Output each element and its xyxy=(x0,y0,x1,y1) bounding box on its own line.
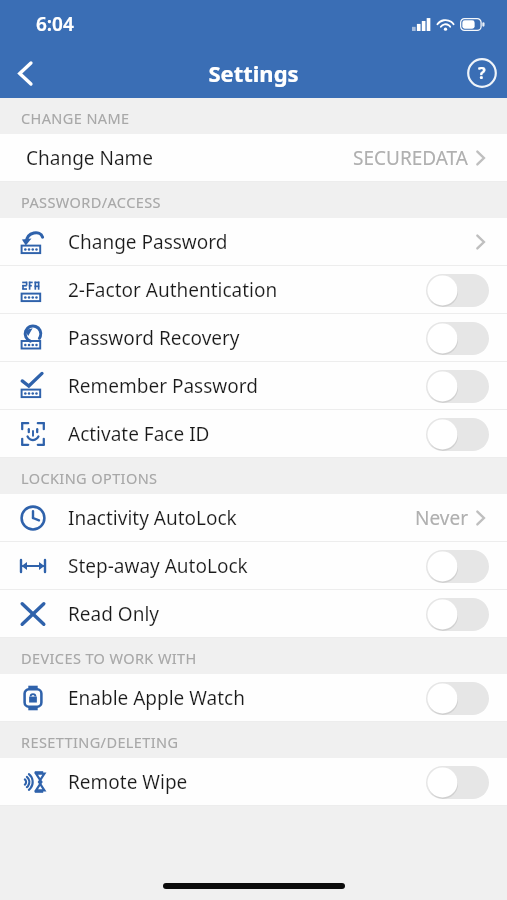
button[interactable]: Toggle xyxy=(426,418,489,451)
button[interactable]: Enable Apple Watch xyxy=(0,674,507,722)
staticText: Inactivity AutoLock xyxy=(68,505,237,531)
button[interactable]: Toggle xyxy=(426,322,489,355)
staticText: CHANGE NAME xyxy=(21,108,130,128)
staticText: Activate Face ID xyxy=(68,421,210,447)
staticText: RESETTING/DELETING xyxy=(21,732,179,752)
button[interactable]: Back xyxy=(0,48,50,98)
button[interactable]: Inactivity AutoLock xyxy=(0,494,507,542)
button[interactable]: Change Password xyxy=(0,218,507,266)
staticText: Remember Password xyxy=(68,373,258,399)
button[interactable]: Activate Face ID xyxy=(0,410,507,458)
button[interactable]: Remember Password xyxy=(0,362,507,410)
staticText: Read Only xyxy=(68,601,159,627)
staticText: Change Password xyxy=(68,229,228,255)
staticText: Never xyxy=(415,505,468,531)
button[interactable]: Read Only xyxy=(0,590,507,638)
button[interactable]: Password Recovery xyxy=(0,314,507,362)
staticText: DEVICES TO WORK WITH xyxy=(21,648,197,668)
staticText: LOCKING OPTIONS xyxy=(21,468,158,488)
staticText: PASSWORD/ACCESS xyxy=(21,192,161,212)
staticText: SECUREDATA xyxy=(353,145,468,171)
button[interactable]: Toggle xyxy=(426,274,489,307)
staticText: ? xyxy=(478,62,486,84)
button[interactable]: Change Name xyxy=(0,134,507,182)
button[interactable]: Toggle xyxy=(426,370,489,403)
button[interactable]: Toggle xyxy=(426,682,489,715)
staticText: Enable Apple Watch xyxy=(68,685,245,711)
staticText: Remote Wipe xyxy=(68,769,188,795)
button[interactable]: Toggle xyxy=(426,550,489,583)
staticText: 2-Factor Authentication xyxy=(68,277,278,303)
button[interactable]: Toggle xyxy=(426,598,489,631)
button[interactable]: Step-away AutoLock xyxy=(0,542,507,590)
staticText: Step-away AutoLock xyxy=(68,553,248,579)
staticText: 6:04 xyxy=(36,11,74,37)
button[interactable]: Help xyxy=(457,48,507,98)
button[interactable]: 2-Factor Authentication xyxy=(0,266,507,314)
staticText: Settings xyxy=(208,58,299,88)
staticText: Change Name xyxy=(26,145,154,171)
staticText: Password Recovery xyxy=(68,325,240,351)
button[interactable]: Toggle xyxy=(426,766,489,799)
button[interactable]: Remote Wipe xyxy=(0,758,507,806)
